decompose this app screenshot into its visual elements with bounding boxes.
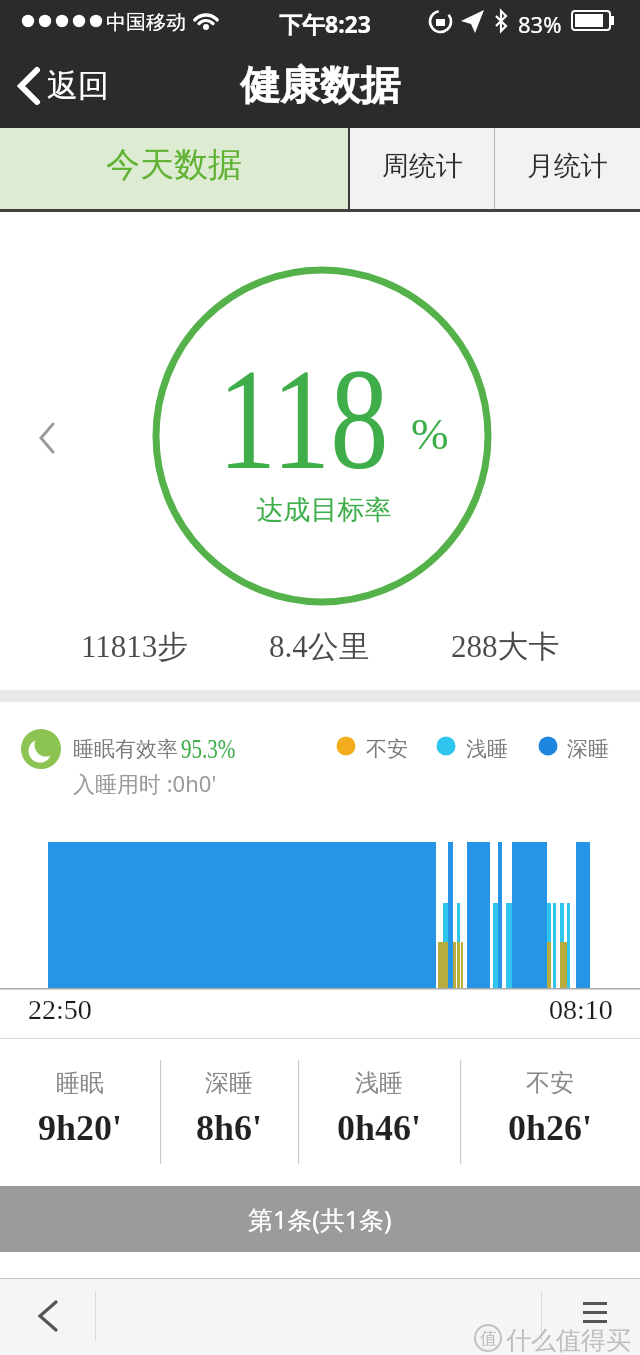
staticText: % — [411, 409, 449, 459]
button[interactable] — [550, 1278, 640, 1355]
staticText: 浅睡 — [466, 736, 508, 762]
button[interactable]: 返回 — [0, 62, 119, 109]
staticText: 83% — [518, 9, 562, 39]
staticText: 深睡 — [567, 736, 609, 762]
button[interactable]: 深睡 — [160, 1038, 298, 1186]
staticText: 不安 — [526, 1068, 574, 1098]
staticText: 今天数据 — [106, 143, 242, 186]
staticText: 周统计 — [382, 149, 463, 183]
staticText: 不安 — [366, 736, 408, 762]
staticText: 95.3% — [181, 734, 236, 764]
button[interactable]: 今天数据 — [0, 128, 348, 212]
staticText: 288大卡 — [451, 627, 560, 666]
staticText: 118 — [218, 340, 389, 499]
staticText: 0h26' — [508, 1108, 593, 1148]
button[interactable]: 月统计 — [495, 128, 640, 212]
staticText: 22:50 — [28, 994, 92, 1025]
button[interactable]: 浅睡 — [298, 1038, 460, 1186]
staticText: 深睡 — [205, 1068, 253, 1098]
staticText: 浅睡 — [355, 1068, 403, 1098]
button[interactable]: 周统计 — [350, 128, 494, 212]
staticText: 中国移动 — [106, 10, 186, 35]
staticText: 值 — [480, 1328, 497, 1349]
button[interactable] — [0, 1278, 90, 1355]
staticText: 返回 — [47, 66, 109, 105]
staticText: 8h6' — [196, 1108, 263, 1148]
staticText: 月统计 — [527, 149, 608, 183]
staticText: 8.4公里 — [269, 627, 370, 666]
staticText: 0h46' — [337, 1108, 422, 1148]
staticText: 睡眠有效率 — [73, 736, 178, 762]
staticText: 健康数据 — [240, 60, 400, 110]
staticText: 达成目标率 — [4, 493, 640, 527]
staticText: 9h20' — [38, 1108, 123, 1148]
button[interactable]: 睡眠 — [0, 1038, 160, 1186]
staticText: 睡眠 — [56, 1068, 104, 1098]
staticText: 08:10 — [549, 994, 613, 1025]
staticText: 11813步 — [81, 627, 189, 666]
staticText: 入睡用时 :0h0' — [73, 768, 217, 798]
button[interactable]: 不安 — [460, 1038, 640, 1186]
staticText: 什么值得买 — [506, 1325, 631, 1355]
staticText: 第1条(共1条) — [248, 1202, 392, 1236]
staticText: 下午8:23 — [279, 8, 371, 39]
